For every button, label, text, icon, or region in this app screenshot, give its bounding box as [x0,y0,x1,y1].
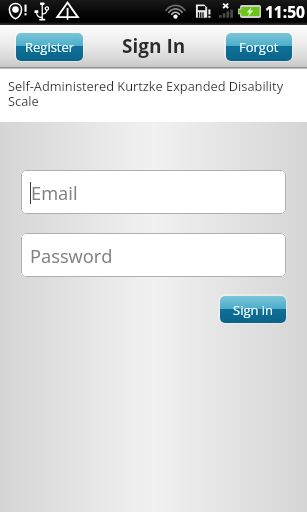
staticText: Forgot [239,38,279,56]
staticText: Self-Administered Kurtzke Expanded Disab… [8,77,287,110]
staticText: 11:50 [265,1,305,22]
button[interactable]: Register [14,31,84,62]
staticText: Sign in [233,301,274,319]
staticText: Register [25,38,75,56]
button[interactable]: Forgot [224,31,293,62]
button[interactable]: Email [21,170,286,214]
button[interactable]: Sign in [218,294,287,324]
staticText: Email [31,180,78,205]
staticText: Sign In [122,33,186,59]
button[interactable]: Password [21,233,286,277]
staticText: Password [30,243,113,268]
